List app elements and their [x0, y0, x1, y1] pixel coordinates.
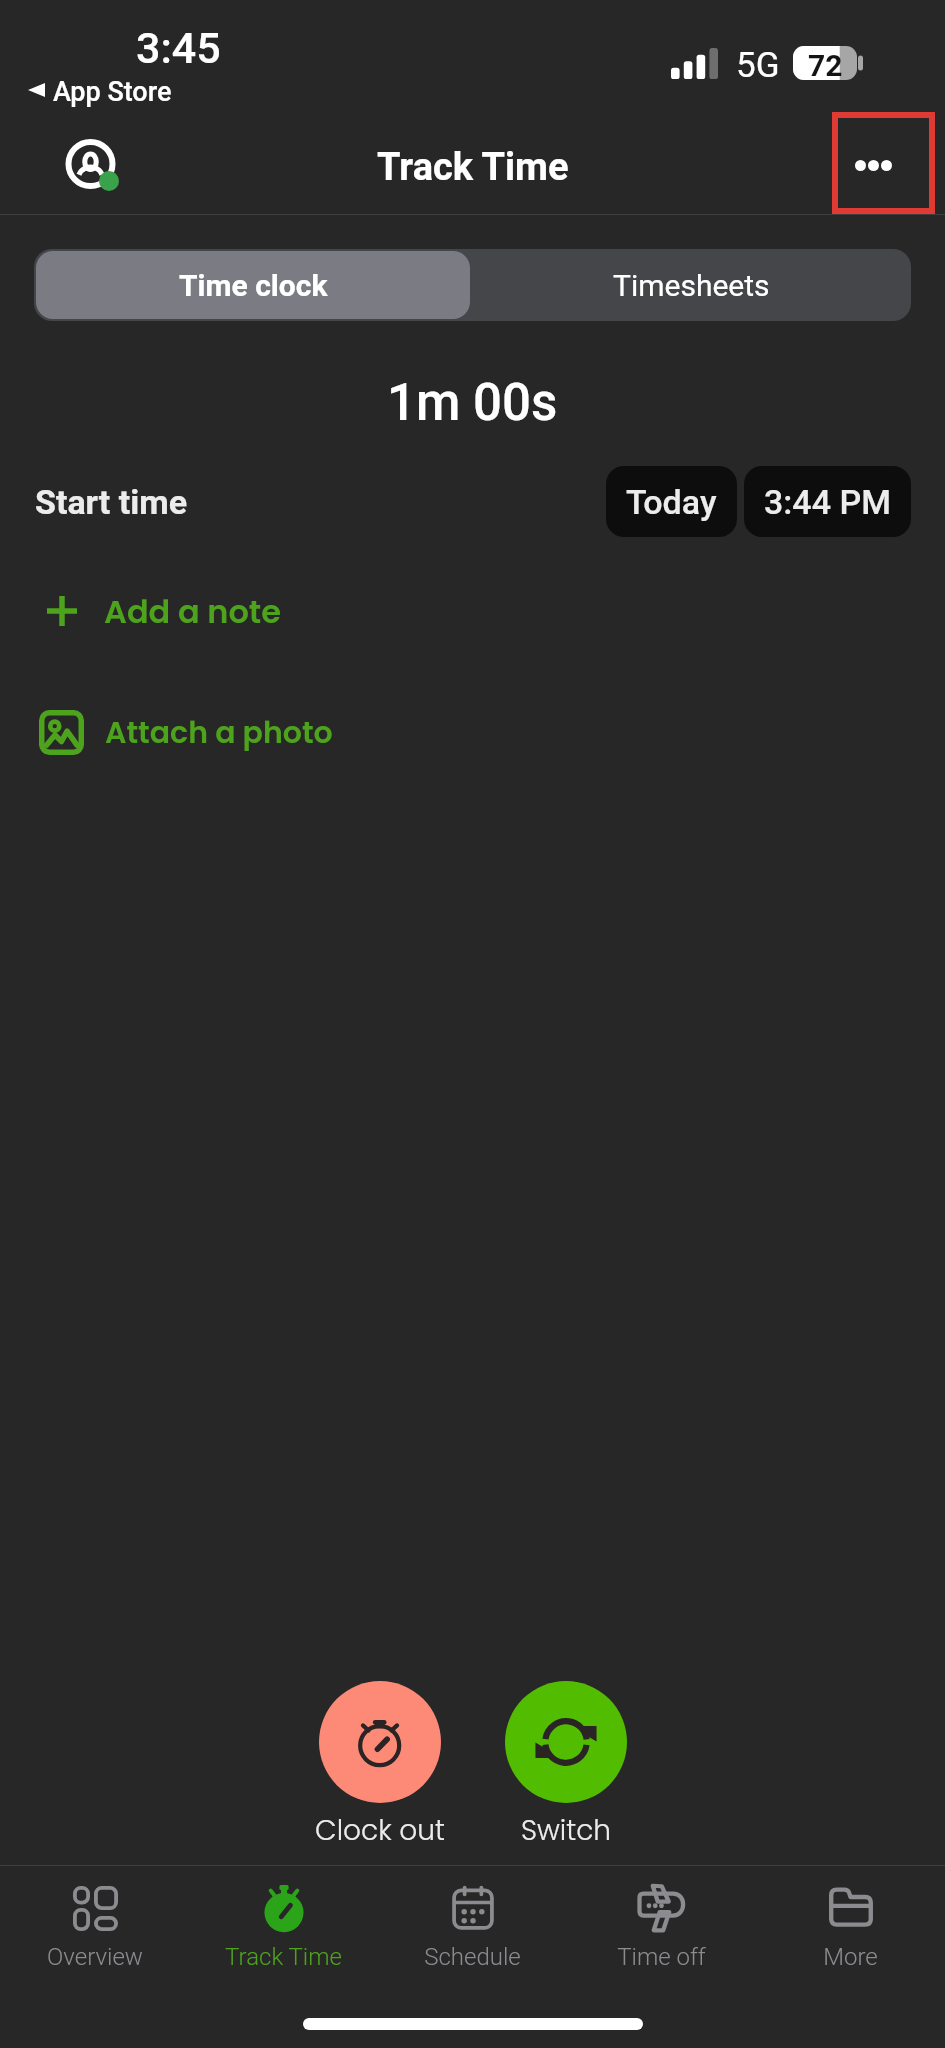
staticText: Track Time: [225, 1943, 342, 1971]
staticText: Attach a photo: [105, 712, 333, 754]
staticText: Switch: [466, 1811, 666, 1850]
staticText: 3:45: [136, 23, 221, 73]
staticText: Time off: [617, 1943, 706, 1971]
staticText: More: [823, 1943, 878, 1971]
button[interactable]: Today: [606, 466, 737, 537]
button[interactable]: Track Time: [189, 1866, 378, 1971]
button[interactable]: Add a note: [0, 581, 945, 641]
staticText: 5G: [736, 45, 780, 86]
staticText: Track Time: [377, 145, 569, 190]
button[interactable]: Overview: [0, 1866, 189, 1971]
button[interactable]: Profile: [68, 141, 118, 191]
staticText: Start time: [35, 482, 188, 522]
staticText: Overview: [47, 1943, 143, 1971]
staticText: Add a note: [104, 589, 281, 634]
button[interactable]: More: [756, 1866, 945, 1971]
staticText: 3:44 PM: [764, 482, 891, 522]
staticText: Today: [626, 482, 717, 522]
staticText: 1m 00s: [387, 373, 558, 433]
staticText: Schedule: [424, 1943, 521, 1971]
button[interactable]: 3:44 PM: [744, 466, 911, 537]
button[interactable]: Switch job: [466, 1681, 666, 1850]
button[interactable]: More options: [832, 112, 935, 214]
staticText: App Store: [53, 76, 172, 108]
staticText: 72: [808, 48, 843, 82]
button[interactable]: Timesheets: [472, 249, 911, 321]
button[interactable]: Time clock: [36, 251, 470, 319]
button[interactable]: Clock out: [280, 1681, 480, 1850]
staticText: Timesheets: [613, 268, 770, 303]
button[interactable]: Schedule: [378, 1866, 567, 1971]
button[interactable]: Time off: [567, 1866, 756, 1971]
button[interactable]: Attach a photo: [0, 710, 945, 755]
staticText: Clock out: [280, 1811, 480, 1850]
staticText: Time clock: [179, 268, 328, 303]
